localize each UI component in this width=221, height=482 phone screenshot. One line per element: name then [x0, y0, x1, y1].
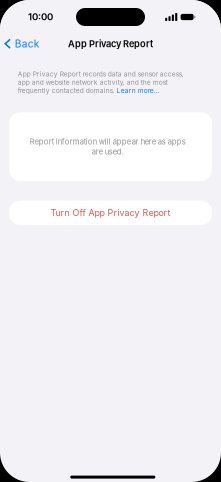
staticText: App Privacy Report [68, 38, 153, 49]
staticText: frequently contacted domains. [18, 87, 117, 95]
button[interactable]: Learn more... [117, 87, 160, 95]
button[interactable]: Back [0, 35, 40, 53]
staticText: Learn more... [117, 87, 160, 95]
staticText: Back [15, 38, 40, 50]
staticText: app and website network activity, and th… [18, 78, 168, 86]
staticText: 10:00 [28, 11, 53, 23]
staticText: Report information will appear here as a… [29, 137, 185, 156]
staticText: Turn Off App Privacy Report [51, 207, 171, 218]
button[interactable]: Turn Off App Privacy Report [9, 200, 212, 225]
staticText: App Privacy Report records data and sens… [18, 70, 184, 78]
